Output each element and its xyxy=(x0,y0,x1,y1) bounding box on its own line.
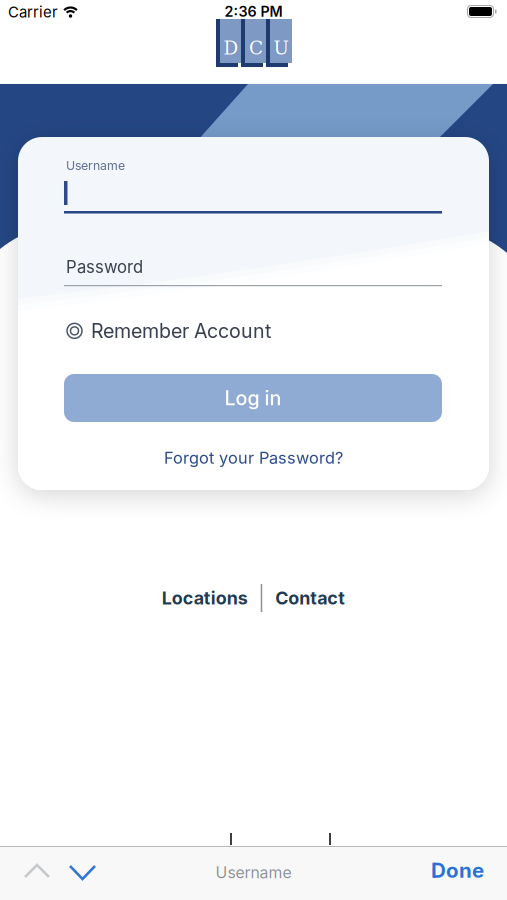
button[interactable]: Password xyxy=(64,257,442,287)
staticText: 2:36 PM xyxy=(224,3,282,20)
button[interactable]: Forgot your Password? xyxy=(164,448,343,468)
staticText: Forgot your Password? xyxy=(164,448,343,468)
button[interactable]: Locations xyxy=(162,587,248,609)
staticText: Username xyxy=(66,158,125,173)
button[interactable]: Remember Account xyxy=(66,319,271,343)
staticText: Contact xyxy=(275,587,345,609)
button[interactable]: Done xyxy=(431,858,484,883)
button[interactable]: Next field xyxy=(69,865,96,880)
staticText: Carrier xyxy=(8,3,58,21)
staticText: Username xyxy=(215,863,291,882)
button[interactable]: Username xyxy=(64,158,442,214)
staticText: C xyxy=(249,37,263,59)
staticText: Locations xyxy=(162,587,248,609)
staticText: Password xyxy=(66,257,143,277)
staticText: Log in xyxy=(224,386,281,410)
staticText: D xyxy=(223,37,238,59)
button[interactable]: Previous field xyxy=(24,864,50,878)
staticText: Done xyxy=(431,858,484,883)
button[interactable]: Contact xyxy=(275,587,345,609)
staticText: U xyxy=(273,37,288,59)
button[interactable]: Log in xyxy=(64,374,442,422)
staticText: Remember Account xyxy=(91,319,271,343)
